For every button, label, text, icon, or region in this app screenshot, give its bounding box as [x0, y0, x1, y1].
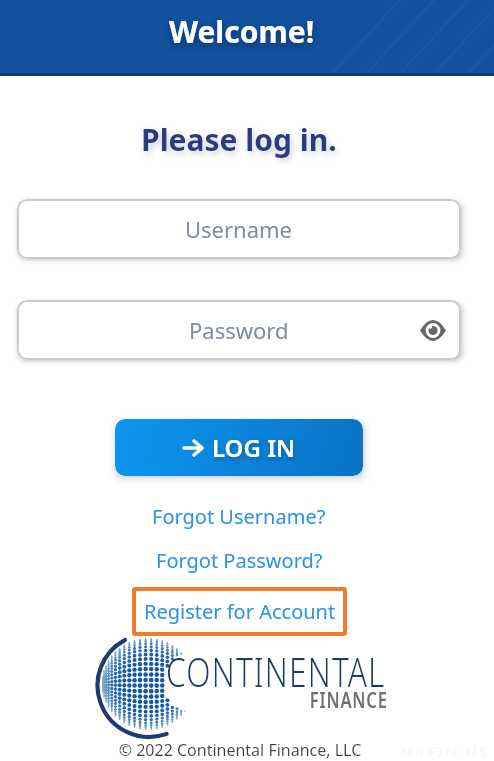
button[interactable]: Forgot Password?	[156, 547, 323, 574]
staticText: © 2022 Continental Finance, LLC	[0, 739, 480, 761]
staticText: Username	[185, 214, 293, 244]
staticText: FINANCE	[310, 686, 388, 715]
staticText: CONTINENTAL	[166, 644, 386, 698]
staticText: MYFIN.US	[400, 741, 490, 761]
button[interactable]: Password	[17, 300, 461, 360]
staticText: Welcome!	[169, 11, 315, 52]
button[interactable]: Forgot Username?	[152, 503, 326, 530]
staticText: Password	[189, 315, 289, 345]
staticText: LOG IN	[212, 431, 296, 464]
staticText: Please log in.	[141, 119, 337, 160]
button[interactable]: LOG IN	[115, 419, 363, 476]
staticText: Register for Account	[144, 598, 336, 625]
button[interactable]: Username	[17, 199, 461, 259]
button[interactable]: Register for Account	[132, 587, 347, 636]
